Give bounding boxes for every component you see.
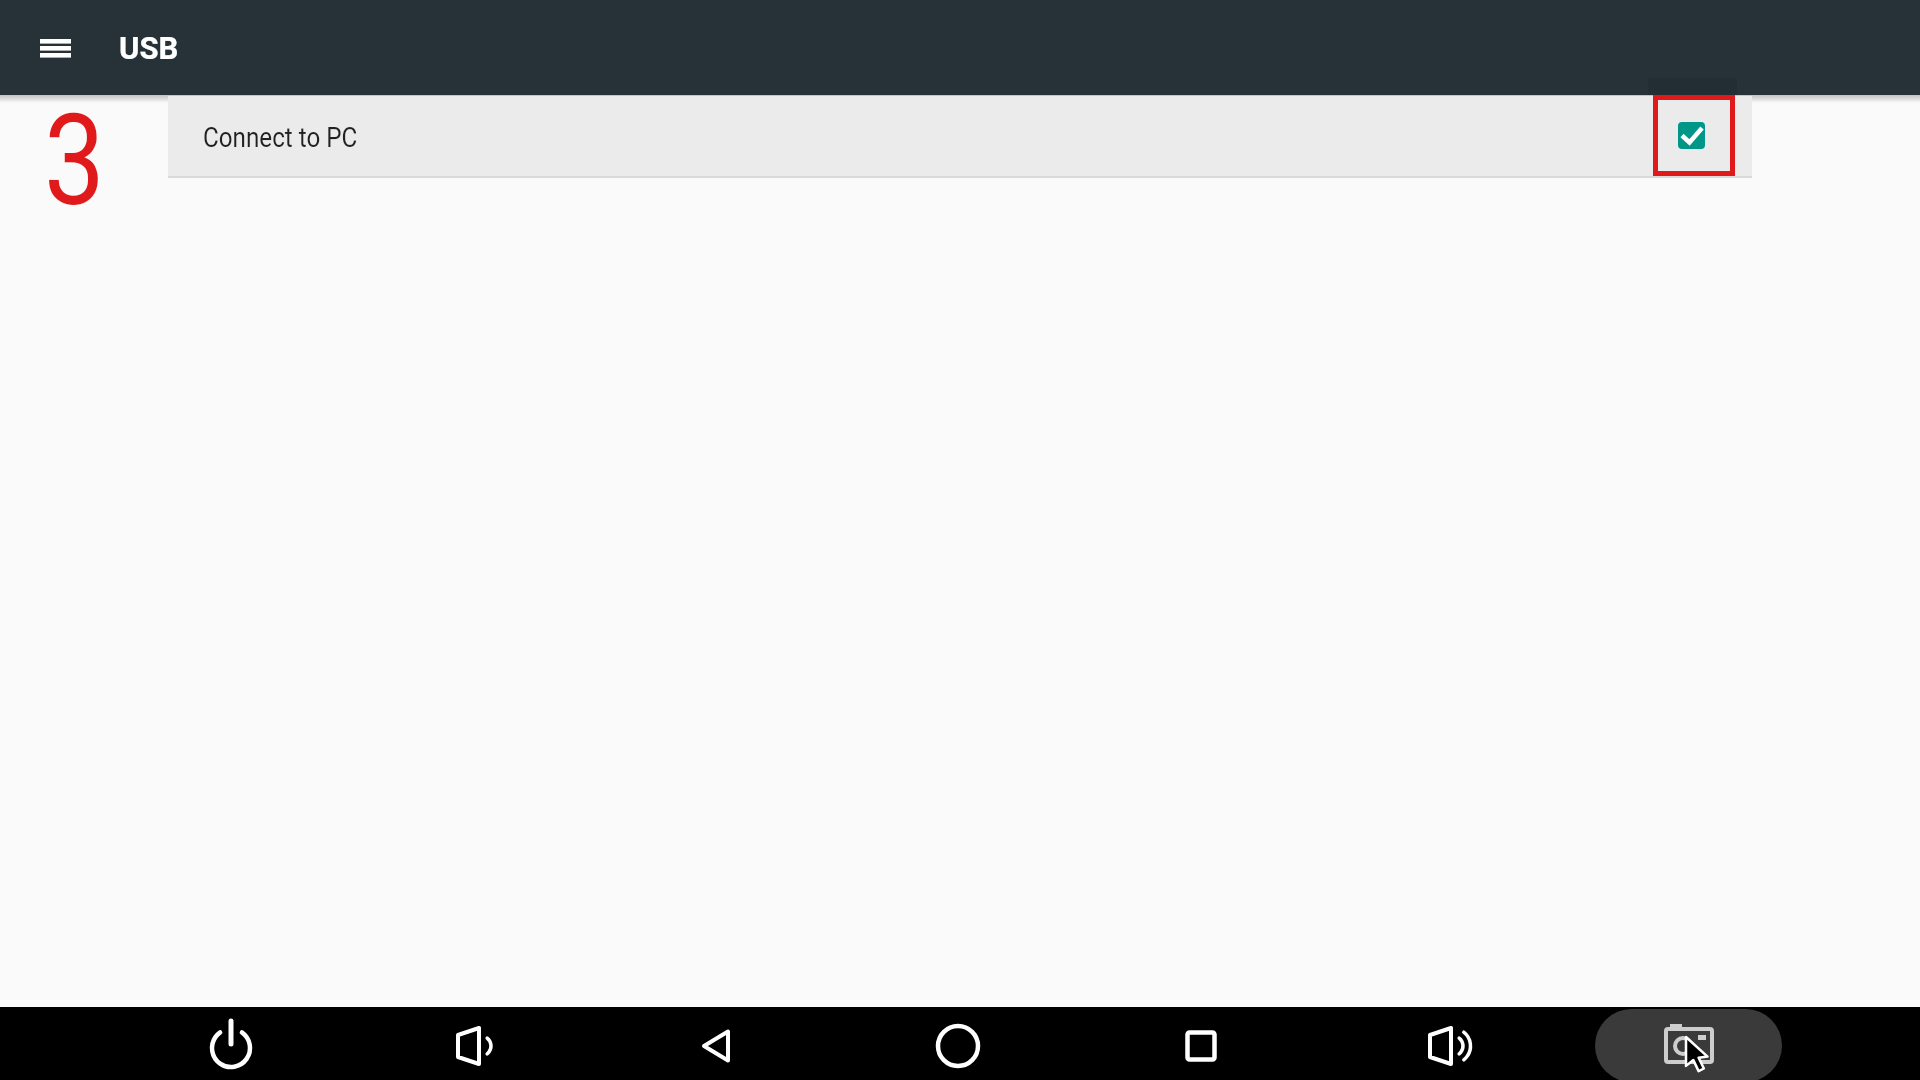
button[interactable] — [1410, 1013, 1476, 1079]
button[interactable] — [1168, 1013, 1234, 1079]
button[interactable] — [439, 1013, 505, 1079]
button[interactable] — [198, 1013, 264, 1079]
staticText: Connect to PC — [203, 121, 358, 154]
button[interactable] — [168, 96, 1752, 176]
staticText: 3 — [44, 87, 105, 235]
staticText: USB — [119, 30, 179, 66]
button[interactable] — [1595, 1009, 1782, 1080]
button[interactable] — [30, 23, 80, 73]
button[interactable] — [682, 1013, 748, 1079]
button[interactable] — [925, 1013, 991, 1079]
